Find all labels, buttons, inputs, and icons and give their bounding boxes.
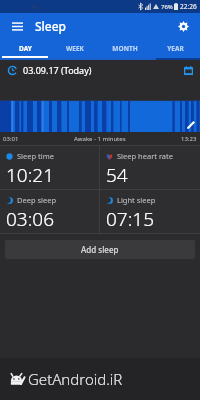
button[interactable]: Settings bbox=[174, 17, 192, 35]
button[interactable]: Edit sleep record bbox=[184, 118, 197, 131]
button[interactable]: Light sleep bbox=[100, 190, 200, 233]
staticText: Deep sleep bbox=[17, 195, 57, 205]
staticText: YEAR bbox=[167, 44, 184, 53]
button[interactable]: 03.09.17 (Today) bbox=[0, 60, 200, 80]
staticText: WEEK bbox=[66, 44, 84, 53]
staticText: Light sleep bbox=[117, 195, 156, 205]
staticText: DAY bbox=[19, 44, 32, 53]
button[interactable]: Pick date bbox=[180, 62, 196, 78]
staticText: Awake - 1 minutes bbox=[74, 135, 126, 143]
button[interactable]: YEAR bbox=[150, 38, 200, 58]
staticText: 03.09.17 (Today) bbox=[23, 64, 92, 76]
button[interactable]: MONTH bbox=[100, 38, 150, 58]
staticText: Sleep heart rate bbox=[117, 151, 173, 161]
staticText: Sleep time bbox=[17, 151, 54, 161]
button[interactable]: Sleep heart rate bbox=[100, 146, 200, 189]
staticText: 54 bbox=[106, 162, 128, 188]
button[interactable]: Add sleep bbox=[5, 240, 195, 259]
staticText: 10:21 bbox=[6, 162, 55, 188]
button[interactable]: Open navigation menu bbox=[8, 17, 26, 35]
staticText: 07:15 bbox=[106, 206, 155, 232]
button[interactable]: WEEK bbox=[50, 38, 100, 58]
button[interactable]: Sleep time bbox=[0, 146, 99, 189]
staticText: 13:23 bbox=[181, 135, 197, 143]
button[interactable]: Deep sleep bbox=[0, 190, 99, 233]
staticText: 22:26 bbox=[180, 2, 197, 11]
staticText: 03:01 bbox=[3, 135, 19, 143]
staticText: GetAndroid.iR bbox=[28, 369, 123, 389]
staticText: 76% bbox=[161, 3, 173, 11]
button[interactable]: DAY bbox=[0, 38, 50, 58]
staticText: 03:06 bbox=[6, 206, 55, 232]
staticText: MONTH bbox=[112, 44, 138, 53]
staticText: Sleep bbox=[35, 18, 67, 34]
staticText: Add sleep bbox=[81, 244, 119, 255]
